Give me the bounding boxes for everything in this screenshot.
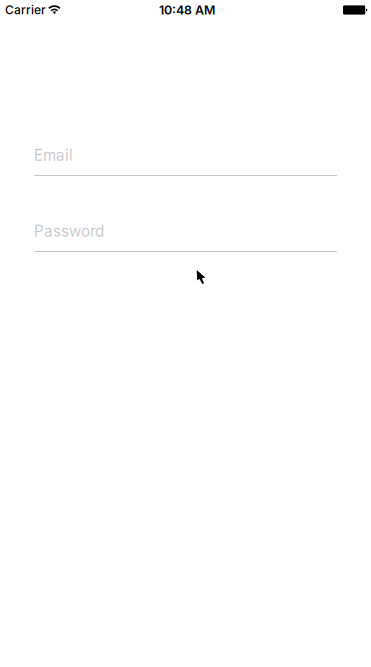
- button[interactable]: Password: [34, 222, 337, 252]
- staticText: Email: [34, 146, 73, 164]
- staticText: Carrier: [5, 3, 46, 17]
- staticText: 10:48 AM: [159, 2, 215, 17]
- staticText: Password: [34, 222, 104, 240]
- button[interactable]: Email: [34, 146, 337, 176]
